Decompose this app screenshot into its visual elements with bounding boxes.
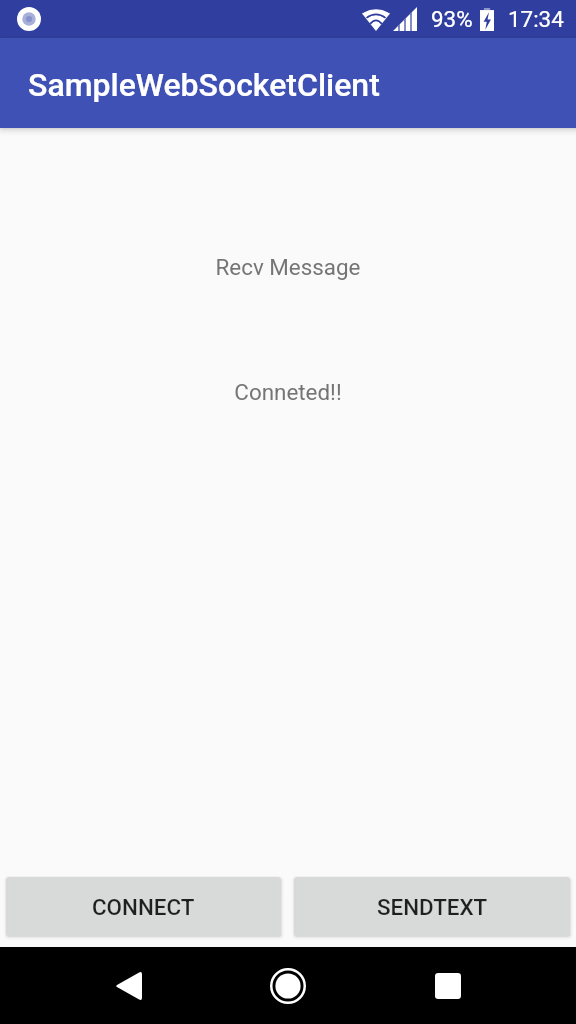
staticText: Conneted!! xyxy=(0,379,576,405)
button[interactable]: Back xyxy=(48,947,208,1024)
button[interactable]: CONNECT xyxy=(6,877,281,936)
button[interactable]: Home xyxy=(208,947,368,1024)
staticText: 17:34 xyxy=(508,6,564,32)
staticText: SampleWebSocketClient xyxy=(28,66,380,104)
staticText: Recv Message xyxy=(0,254,576,280)
button[interactable]: SENDTEXT xyxy=(294,877,570,936)
staticText: 93% xyxy=(431,6,473,32)
staticText: CONNECT xyxy=(92,894,195,920)
button[interactable]: Recent apps xyxy=(368,947,528,1024)
staticText: SENDTEXT xyxy=(377,894,488,920)
